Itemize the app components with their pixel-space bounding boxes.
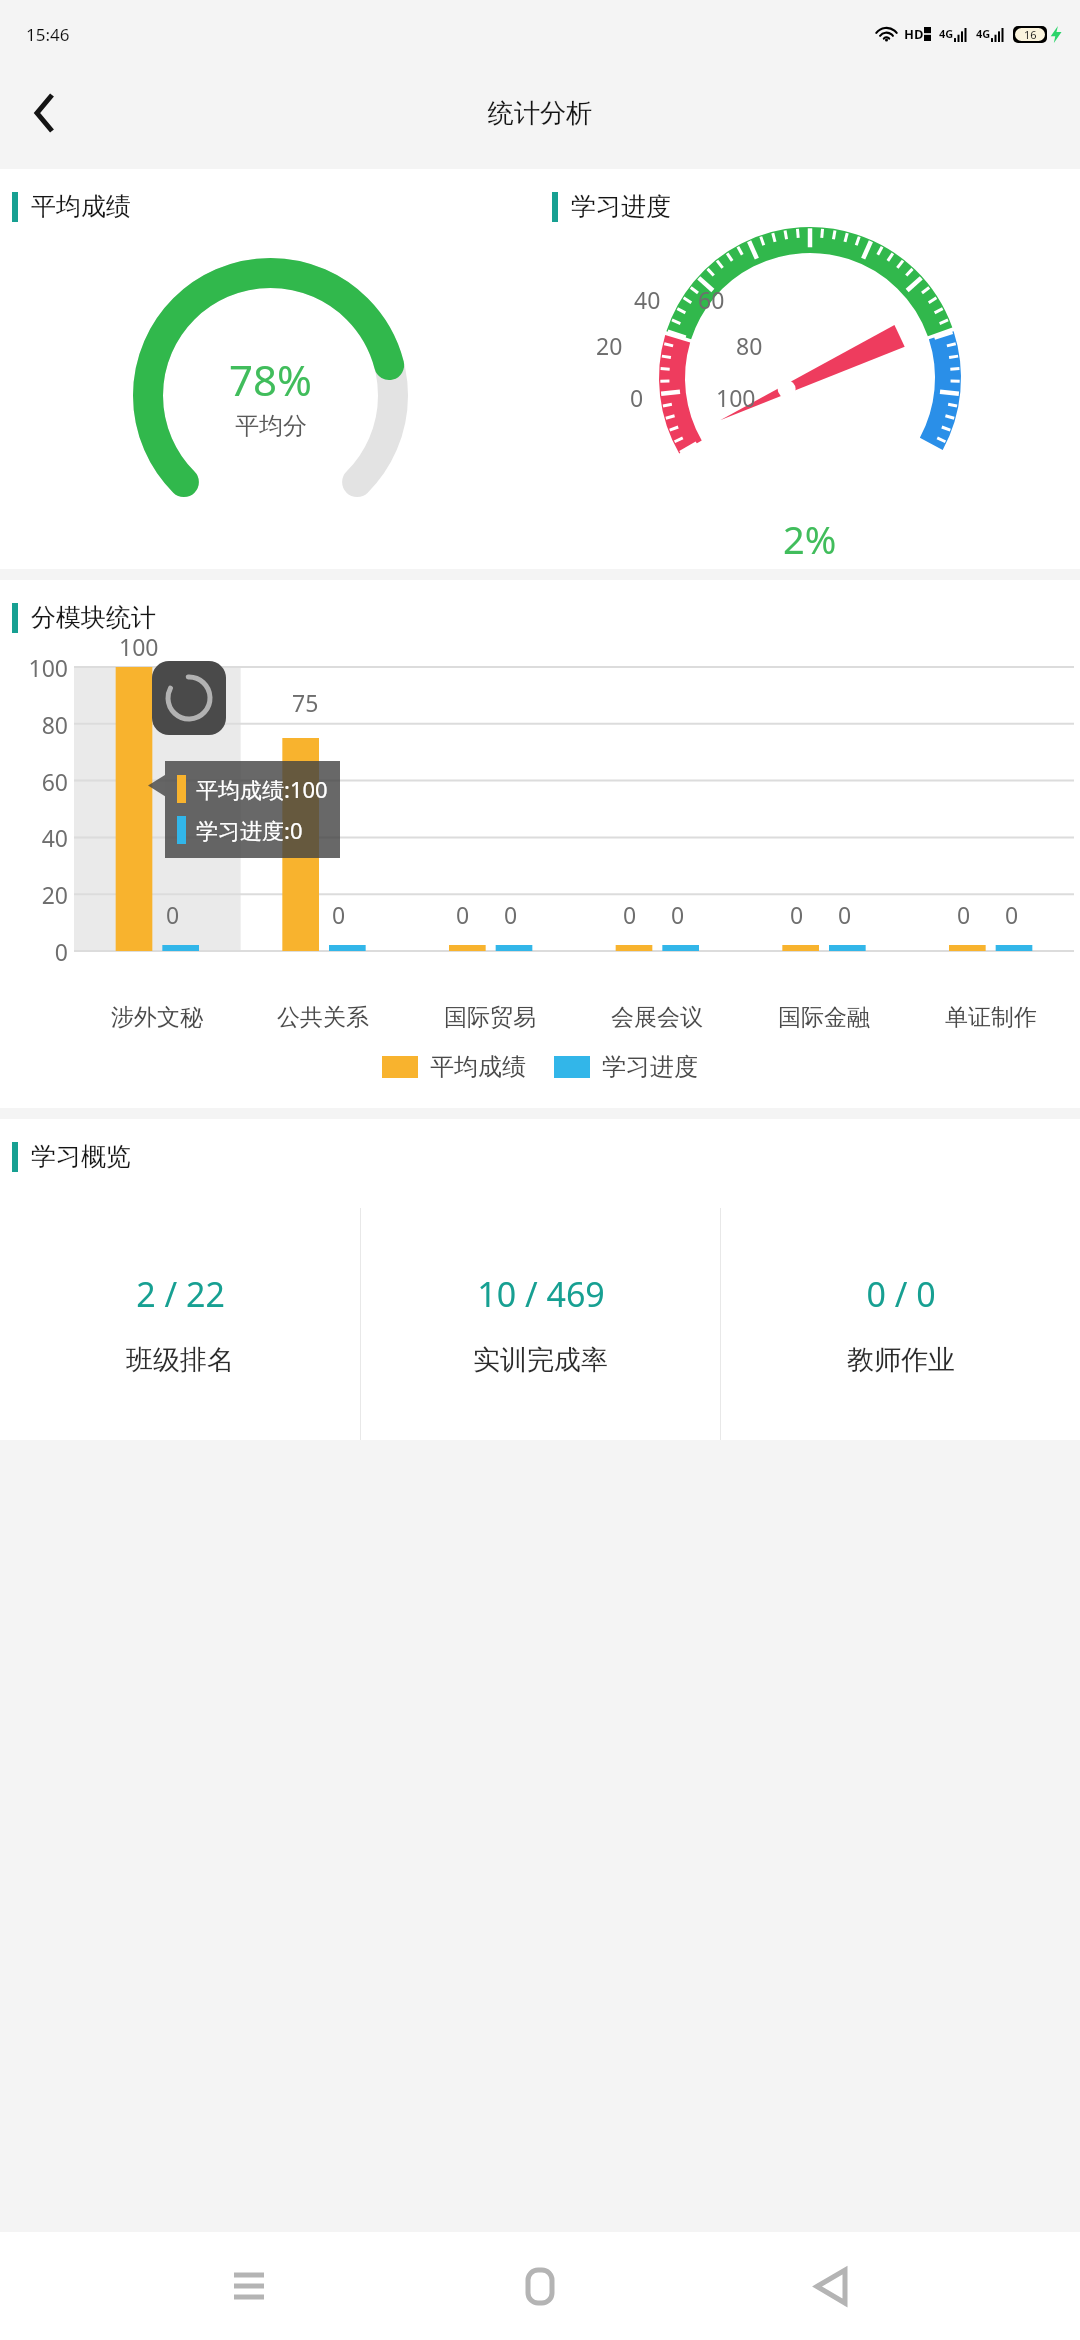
staticText: 80 — [736, 330, 763, 361]
button[interactable]: 0 / 0 — [721, 1208, 1080, 1440]
staticText: HD — [904, 25, 924, 43]
staticText: 60 — [698, 284, 725, 315]
staticText: 0 — [630, 382, 644, 413]
staticText: 统计分析 — [488, 97, 592, 130]
button[interactable]: 2 / 22 — [0, 1208, 360, 1440]
staticText: 40 — [634, 284, 661, 315]
staticText: 100 — [716, 382, 756, 413]
staticText: 0 — [957, 899, 971, 930]
staticText: 公共关系 — [277, 1003, 369, 1032]
button[interactable]: 10 / 469 — [361, 1208, 720, 1440]
staticText: 国际贸易 — [444, 1003, 536, 1032]
staticText: 60 — [8, 766, 68, 797]
staticText: 16 — [1024, 27, 1037, 42]
staticText: 0 — [504, 899, 518, 930]
staticText: 0 — [838, 899, 852, 930]
staticText: 0 — [623, 899, 637, 930]
button[interactable]: Recents — [207, 2244, 291, 2328]
staticText: 20 — [8, 879, 68, 910]
staticText: 78% — [229, 351, 312, 408]
staticText: 100 — [119, 631, 159, 662]
staticText: 学习概览 — [31, 1141, 131, 1172]
staticText: 0 — [1005, 899, 1019, 930]
button[interactable]: Back — [10, 78, 80, 148]
staticText: 0 — [8, 936, 68, 967]
staticText: 15:46 — [26, 23, 70, 46]
staticText: 4G — [976, 26, 991, 41]
staticText: 2% — [783, 513, 837, 565]
staticText: 0 — [332, 899, 346, 930]
staticText: 平均成绩 — [31, 191, 131, 222]
staticText: 80 — [8, 709, 68, 740]
staticText: 0 — [166, 899, 180, 930]
staticText: 0 — [456, 899, 470, 930]
staticText: 学习进度 — [571, 191, 671, 222]
staticText: 教师作业 — [847, 1343, 955, 1377]
staticText: 平均分 — [235, 411, 307, 441]
staticText: 40 — [8, 822, 68, 853]
staticText: 平均成绩 — [430, 1052, 526, 1082]
staticText: 0 — [671, 899, 685, 930]
button[interactable]: Back — [789, 2244, 873, 2328]
staticText: 10 / 469 — [477, 1271, 605, 1317]
staticText: 0 / 0 — [866, 1271, 936, 1317]
staticText: 单证制作 — [945, 1003, 1037, 1032]
staticText: 国际金融 — [778, 1003, 870, 1032]
staticText: 20 — [596, 330, 623, 361]
button[interactable]: Home — [498, 2244, 582, 2328]
staticText: 4G — [939, 26, 954, 41]
staticText: 实训完成率 — [473, 1343, 608, 1377]
staticText: 学习进度:0 — [196, 815, 303, 845]
staticText: 会展会议 — [611, 1003, 703, 1032]
staticText: 平均成绩:100 — [196, 774, 328, 804]
staticText: 涉外文秘 — [111, 1003, 203, 1032]
staticText: 2 / 22 — [136, 1271, 225, 1317]
staticText: 分模块统计 — [31, 602, 156, 633]
staticText: 班级排名 — [126, 1343, 234, 1377]
staticText: 100 — [8, 652, 68, 683]
staticText: 学习进度 — [602, 1052, 698, 1082]
staticText: 75 — [292, 687, 319, 718]
staticText: 0 — [790, 899, 804, 930]
